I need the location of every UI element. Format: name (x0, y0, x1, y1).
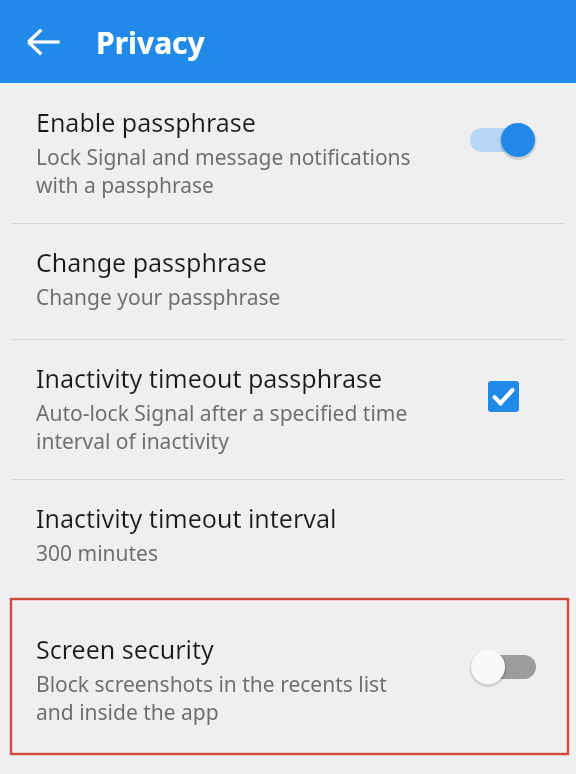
staticText: Change passphrase (36, 245, 267, 279)
button[interactable]: Enable passphrase (0, 84, 576, 223)
staticText: Screen security (36, 632, 214, 666)
staticText: Auto-lock Signal after a specified time … (36, 399, 408, 455)
button[interactable]: Inactivity timeout passphrase checkbox, … (480, 373, 526, 419)
staticText: Inactivity timeout passphrase (36, 361, 383, 395)
staticText: 300 minutes (36, 539, 158, 568)
staticText: Inactivity timeout interval (36, 501, 337, 535)
button[interactable]: Inactivity timeout interval (0, 480, 576, 593)
staticText: Block screenshots in the recents list an… (36, 670, 387, 726)
button[interactable]: Back (14, 12, 74, 72)
button[interactable]: Screen security toggle, off (468, 647, 542, 687)
button[interactable]: Change passphrase (0, 224, 576, 339)
staticText: Lock Signal and message notifications wi… (36, 143, 411, 199)
staticText: Privacy (96, 22, 205, 63)
button[interactable]: Inactivity timeout passphrase (0, 340, 576, 479)
staticText: Change your passphrase (36, 283, 281, 312)
button[interactable]: Enable passphrase toggle, on (466, 120, 540, 160)
button[interactable]: Screen security (11, 599, 568, 726)
staticText: Enable passphrase (36, 105, 256, 139)
